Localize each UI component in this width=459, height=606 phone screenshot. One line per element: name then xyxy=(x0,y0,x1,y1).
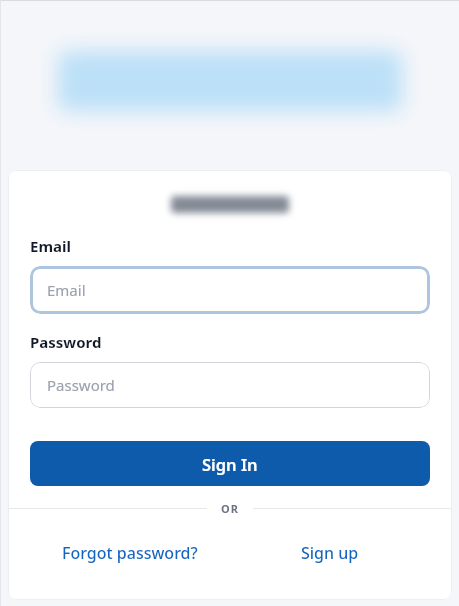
button[interactable]: Forgot password? xyxy=(30,542,230,564)
button[interactable]: Sign In xyxy=(30,441,430,486)
staticText: OR xyxy=(221,501,239,516)
staticText: Email xyxy=(30,236,71,256)
staticText: Password xyxy=(30,332,102,352)
staticText: Forgot password? xyxy=(62,542,198,564)
button[interactable]: Password xyxy=(30,362,430,408)
button[interactable]: Email xyxy=(30,266,430,314)
staticText: Sign In xyxy=(202,453,258,475)
staticText: Sign up xyxy=(301,542,359,564)
button[interactable]: Sign up xyxy=(230,542,430,564)
staticText: Password xyxy=(47,375,115,395)
staticText: Email xyxy=(47,280,86,300)
